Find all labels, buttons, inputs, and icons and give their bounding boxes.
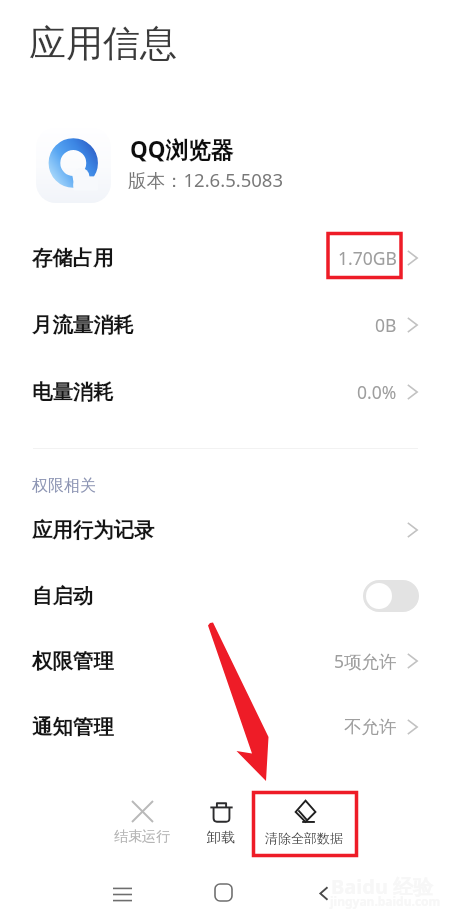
staticText: jingyan.baidu.com [330,893,441,909]
staticText: 自启动 [32,583,94,609]
button[interactable]: Home [205,874,241,910]
staticText: 清除全部数据 [265,830,343,846]
button[interactable]: 自启动 [0,563,450,628]
staticText: 0.0% [357,380,397,404]
staticText: 存储占用 [32,245,114,271]
staticText: 通知管理 [32,714,114,740]
other: 结束运行 [132,801,153,822]
button[interactable]: 权限管理 [0,628,450,694]
button[interactable]: 结束运行 [114,790,170,846]
staticText: 应用信息 [29,20,177,67]
staticText: 月流量消耗 [32,312,134,338]
button[interactable]: Back [306,875,342,911]
staticText: 权限管理 [32,648,114,674]
other: 卸载 [210,801,233,824]
staticText: Baidu 经验 [331,873,434,900]
staticText: 权限相关 [32,476,96,496]
button[interactable]: 卸载 [207,790,235,847]
staticText: 版本：12.6.5.5083 [128,167,284,192]
staticText: 电量消耗 [32,379,114,405]
staticText: 5项允许 [334,649,397,673]
button[interactable]: 存储占用 [0,224,450,291]
staticText: 应用行为记录 [32,517,155,543]
button[interactable]: 月流量消耗 [0,291,450,358]
button[interactable]: 清除全部数据 [265,790,343,846]
staticText: QQ浏览器 [130,134,234,165]
staticText: 结束运行 [114,828,170,846]
button[interactable]: Recents [104,876,140,912]
button[interactable]: 自启动 toggle [363,580,419,612]
other: 清除全部数据 [293,800,316,823]
button[interactable]: 电量消耗 [0,358,450,425]
button[interactable]: 通知管理 [0,694,450,760]
button[interactable]: 应用行为记录 [0,497,450,563]
staticText: 卸载 [207,829,235,847]
staticText: 不允许 [344,716,397,738]
staticText: 0B [375,313,397,337]
staticText: 1.70GB [338,246,397,270]
